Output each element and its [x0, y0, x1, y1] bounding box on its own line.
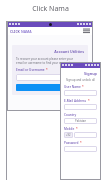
staticText: NAMA: [21, 29, 32, 34]
staticText: +92: [66, 133, 71, 137]
button[interactable]: +92: [64, 132, 73, 138]
staticText: *: [80, 141, 82, 145]
button[interactable]: [16, 74, 84, 81]
button[interactable]: [64, 104, 97, 110]
button[interactable]: Menu: [83, 28, 90, 34]
staticText: E-Mail Address: [64, 99, 87, 103]
button[interactable]: [74, 132, 97, 138]
button[interactable]: [64, 90, 97, 96]
staticText: Signup and unlock all features: [64, 78, 97, 82]
button[interactable]: [64, 146, 97, 152]
staticText: Click Nama: [0, 4, 101, 14]
button[interactable]: Submit: [16, 84, 84, 91]
staticText: User Name: [64, 85, 81, 89]
staticText: *: [76, 127, 78, 131]
staticText: To recover your account please enter you…: [16, 57, 74, 65]
staticText: Email or Username: [16, 68, 45, 72]
staticText: Submit: [69, 86, 80, 90]
staticText: Password: [64, 141, 79, 145]
other: Menu: [83, 28, 90, 34]
staticText: *: [46, 68, 48, 72]
button[interactable]: CLICK: [10, 29, 32, 34]
staticText: Account Utilities: [16, 49, 84, 54]
button[interactable]: Pakistan: [64, 118, 97, 124]
staticText: *: [82, 85, 84, 89]
staticText: Signup: [64, 71, 97, 76]
staticText: *: [88, 99, 90, 103]
staticText: CLICK: [10, 29, 20, 34]
staticText: Mobile: [64, 127, 75, 131]
staticText: Country: [64, 113, 77, 117]
staticText: Pakistan: [75, 119, 87, 123]
